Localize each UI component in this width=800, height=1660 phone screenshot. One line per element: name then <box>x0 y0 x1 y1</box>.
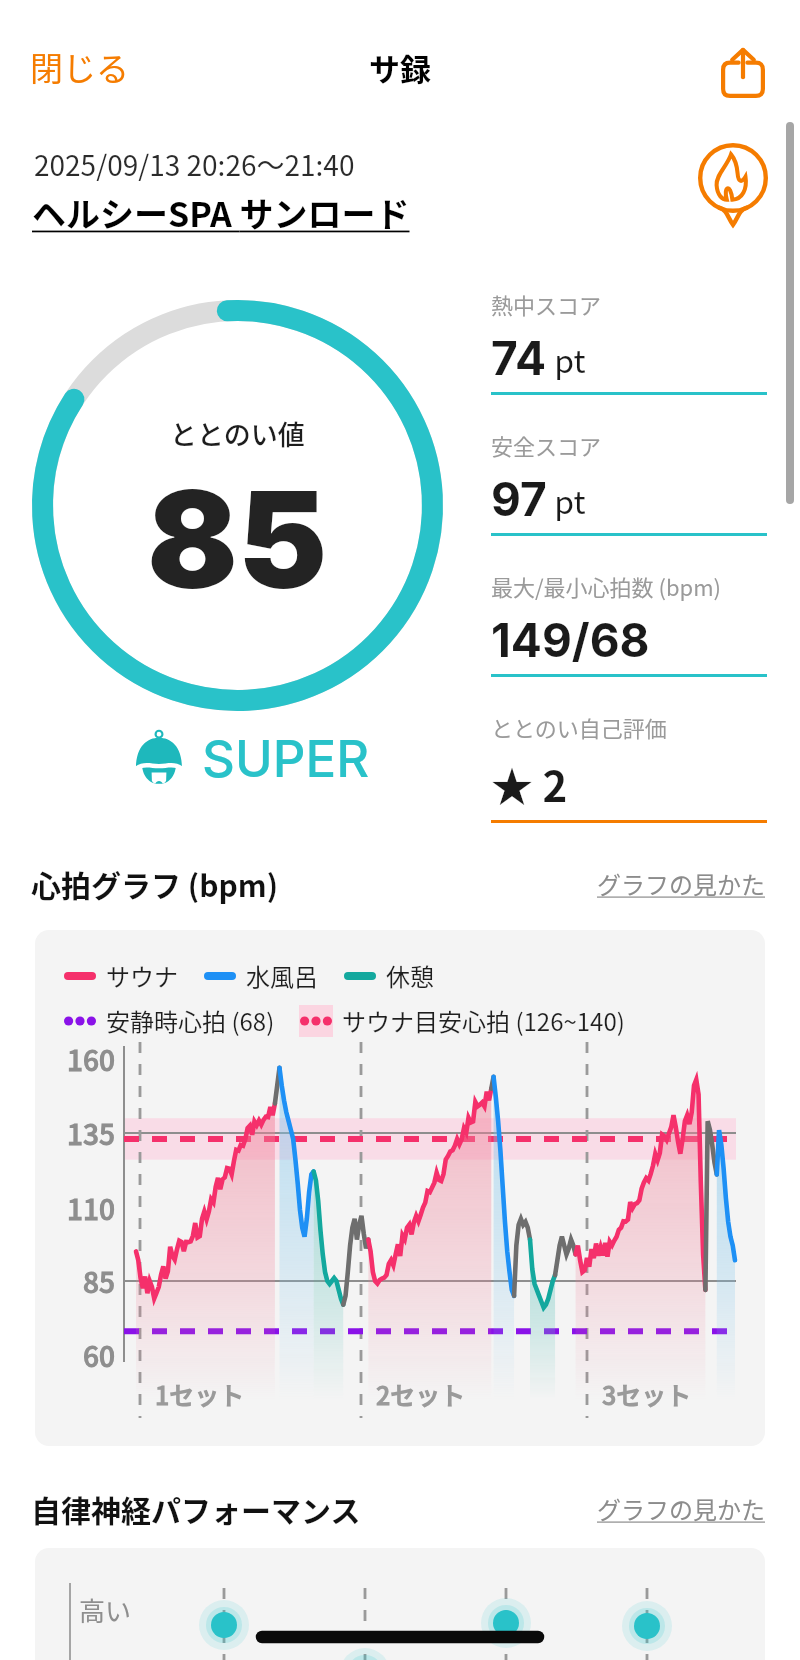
staticText: サウナ目安心拍 (126~140) <box>342 1003 625 1038</box>
staticText: 3セット <box>602 1376 692 1412</box>
staticText: 休憩 <box>386 958 434 993</box>
staticText: ととのい値 <box>170 414 305 453</box>
button[interactable]: 熱中スコア <box>491 288 767 429</box>
button[interactable]: グラフの見かた <box>597 1491 765 1526</box>
staticText: 2025/09/13 20:26〜21:40 <box>34 144 355 185</box>
staticText: 最大/最小心拍数 (bpm) <box>491 570 722 602</box>
staticText: SUPER <box>202 728 370 790</box>
button[interactable]: ととのい値 <box>32 300 443 711</box>
staticText: 安全スコア <box>491 429 602 461</box>
staticText: 85 <box>147 458 328 620</box>
staticText: 60 <box>83 1335 115 1376</box>
staticText: pt <box>547 336 586 382</box>
staticText: 1セット <box>155 1376 245 1412</box>
button[interactable]: グラフの見かた <box>597 866 765 901</box>
staticText: 160 <box>67 1039 115 1080</box>
staticText: グラフの見かた <box>597 866 765 901</box>
staticText: pt <box>547 477 586 523</box>
staticText: 97 <box>491 471 547 527</box>
staticText: サウナ <box>106 958 178 993</box>
staticText: 2セット <box>376 1376 466 1412</box>
staticText: 熱中スコア <box>491 288 602 320</box>
button[interactable]: 最大/最小心拍数 (bpm) <box>491 570 767 711</box>
staticText: 高い <box>79 1591 132 1629</box>
button[interactable]: 共有 <box>703 32 783 112</box>
staticText: 85 <box>83 1261 115 1302</box>
staticText: ★ 2 <box>491 753 568 814</box>
staticText: 110 <box>67 1188 115 1229</box>
staticText: ととのい自己評価 <box>491 711 667 743</box>
button[interactable]: 安全スコア <box>491 429 767 570</box>
button[interactable]: ととのい自己評価 <box>491 711 767 841</box>
staticText: 閉じる <box>30 43 129 91</box>
staticText: 自律神経パフォーマンス <box>31 1487 361 1530</box>
staticText: 74 <box>491 330 547 386</box>
button[interactable]: 閉じる <box>18 33 141 101</box>
staticText: 149/68 <box>491 612 650 668</box>
staticText: 135 <box>67 1113 115 1154</box>
staticText: ヘルシーSPA サンロード <box>32 188 410 237</box>
staticText: 水風呂 <box>246 958 318 993</box>
button[interactable]: SUPER <box>136 727 370 789</box>
staticText: 心拍グラフ (bpm) <box>31 862 279 905</box>
staticText: 安静時心拍 (68) <box>106 1003 275 1038</box>
button[interactable]: サウナ施設 <box>687 139 779 231</box>
staticText: サ録 <box>369 45 431 90</box>
staticText: グラフの見かた <box>597 1491 765 1526</box>
